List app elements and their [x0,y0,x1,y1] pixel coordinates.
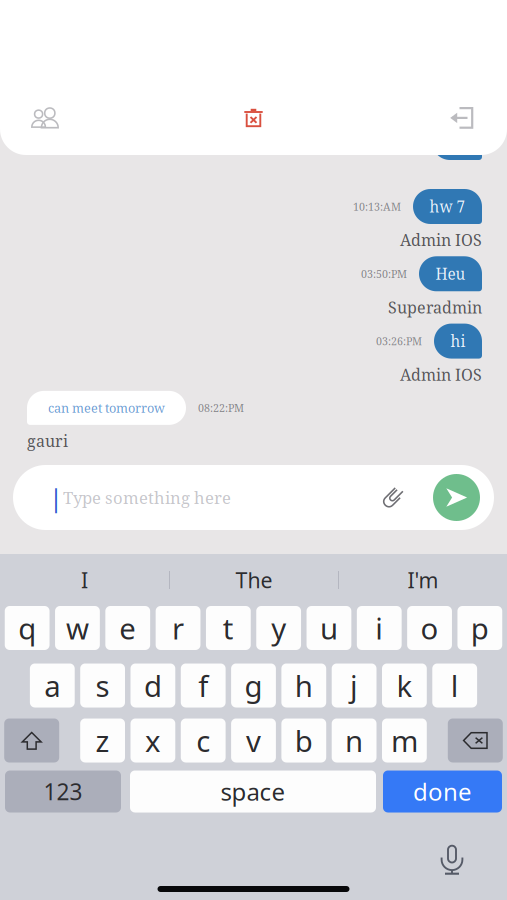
button[interactable]: 123 [5,770,121,812]
staticText: a [44,666,60,705]
staticText: h [295,666,313,705]
button[interactable]: a [30,663,75,707]
staticText: o [420,608,438,647]
button[interactable]: Leave chat [436,100,488,136]
staticText: Superadmin [388,296,482,318]
staticText: 08:22:PM [198,401,244,415]
staticText: The [235,566,272,594]
button[interactable]: done [383,770,502,812]
button[interactable]: j [332,663,376,707]
button[interactable]: p [457,606,502,650]
button[interactable]: c [181,718,226,762]
button[interactable]: Participants [19,100,71,136]
button[interactable]: i [357,606,402,650]
button[interactable]: Delete chat [227,100,279,136]
staticText: k [396,666,412,705]
button[interactable]: Send [433,474,480,521]
button[interactable]: space [130,770,376,812]
button[interactable]: n [332,718,376,762]
staticText: b [295,721,313,760]
button[interactable]: Shift [4,718,59,762]
staticText: y [271,608,286,647]
button[interactable]: o [407,606,452,650]
button[interactable]: f [181,663,226,707]
staticText: | [49,481,63,514]
staticText: z [96,721,110,760]
staticText: l [451,666,459,705]
staticText: p [471,608,489,647]
button[interactable]: y [256,606,301,650]
button[interactable]: l [432,663,477,707]
button[interactable]: t [206,606,251,650]
staticText: done [413,776,472,807]
staticText: q [18,608,36,647]
staticText: Heu [435,263,465,284]
staticText: I [81,566,88,594]
button[interactable]: b [281,718,326,762]
staticText: g [244,666,262,705]
staticText: w [66,608,89,647]
staticText: 03:50:PM [361,266,407,281]
button[interactable]: Backspace [448,718,503,762]
staticText: e [119,608,136,647]
staticText: j [350,666,358,705]
staticText: d [144,666,162,705]
staticText: f [198,666,208,705]
button[interactable]: s [80,663,125,707]
staticText: Admin IOS [400,364,482,385]
staticText: 03:26:PM [376,334,422,348]
button[interactable]: r [156,606,200,650]
staticText: m [391,721,418,760]
button[interactable]: Attach file [376,480,410,514]
button[interactable]: I'm [339,560,507,600]
button[interactable]: z [80,718,125,762]
button[interactable]: u [306,606,351,650]
staticText: s [96,666,110,705]
staticText: v [246,721,261,760]
button[interactable]: g [231,663,276,707]
button[interactable]: k [382,663,427,707]
button[interactable]: m [382,718,427,762]
staticText: 10:13:AM [353,199,401,214]
staticText: 123 [43,776,82,806]
staticText: n [345,721,363,760]
button[interactable]: d [130,663,175,707]
button[interactable]: q [5,606,49,650]
button[interactable]: The [170,560,338,600]
staticText: space [220,776,285,807]
staticText: I'm [407,566,438,594]
button[interactable]: Dictate [430,834,474,884]
staticText: x [145,721,161,760]
button[interactable]: h [281,663,326,707]
staticText: Admin IOS [400,229,482,251]
staticText: t [223,608,234,647]
button[interactable]: w [55,606,100,650]
button[interactable]: x [130,718,175,762]
staticText: Type something here [63,486,231,509]
button[interactable]: v [231,718,276,762]
button[interactable]: e [105,606,150,650]
staticText: r [172,608,184,647]
staticText: hi [450,331,465,351]
staticText: hw 7 [429,196,465,217]
staticText: can meet tomorrow [48,399,165,416]
staticText: u [320,608,338,647]
staticText: gauri [27,430,68,452]
staticText: i [375,608,383,647]
button[interactable]: I [0,560,169,600]
staticText: c [196,721,210,760]
